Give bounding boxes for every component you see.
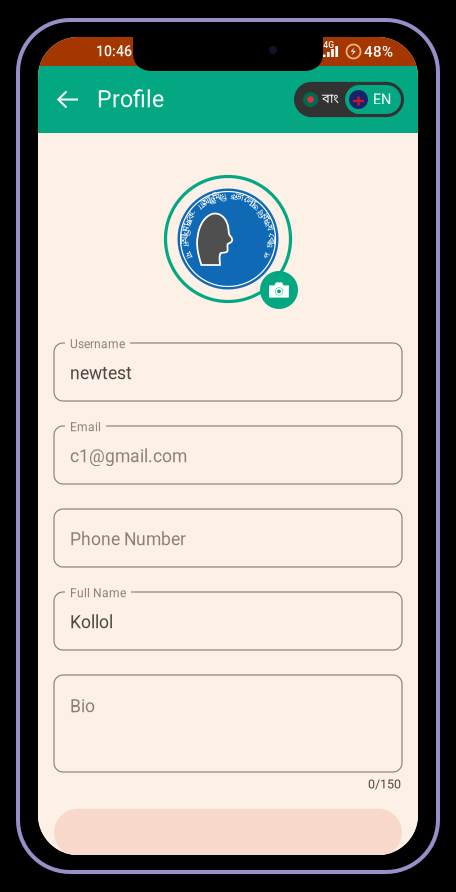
staticText: বাং xyxy=(322,91,339,108)
staticText: মি xyxy=(224,190,232,202)
button[interactable]: EN xyxy=(345,85,401,114)
staticText: Full Name xyxy=(70,586,126,600)
staticText: Profile xyxy=(97,86,164,113)
staticText: Bio xyxy=(70,696,95,716)
staticText xyxy=(227,190,229,202)
staticText: 10:46 xyxy=(96,43,132,60)
staticText: বো xyxy=(223,190,233,202)
staticText: c1@gmail.com xyxy=(70,446,187,466)
staticText: সি xyxy=(224,277,231,287)
staticText: ক xyxy=(224,277,231,287)
staticText: রা xyxy=(224,190,231,202)
staticText: 48% xyxy=(364,43,393,60)
staticText: newtest xyxy=(70,363,132,383)
staticText xyxy=(227,190,229,202)
staticText: র্থি xyxy=(224,277,231,287)
staticText: 4G xyxy=(323,40,334,50)
staticText: ক xyxy=(224,277,231,287)
staticText: EN xyxy=(373,91,391,108)
button[interactable]: Back xyxy=(38,72,97,127)
staticText: - xyxy=(226,277,229,287)
staticText: শা xyxy=(224,277,232,287)
staticText: আ xyxy=(223,190,233,202)
staticText: ক xyxy=(224,277,231,287)
staticText: লো xyxy=(222,190,234,202)
staticText: - xyxy=(226,277,229,287)
staticText: Phone Number xyxy=(70,529,186,549)
staticText: আ xyxy=(223,190,233,202)
staticText: কে xyxy=(223,190,233,202)
button[interactable]: বাং xyxy=(297,85,345,114)
staticText: রী xyxy=(224,277,231,287)
staticText: 0/150 xyxy=(368,777,401,792)
staticText: প xyxy=(225,277,231,287)
staticText: মা xyxy=(224,190,232,202)
staticText: Username xyxy=(70,337,125,351)
button[interactable]: Change profile photo xyxy=(260,271,298,309)
staticText: Email xyxy=(70,420,101,434)
staticText: চা xyxy=(225,277,231,287)
staticText xyxy=(227,190,229,202)
staticText: ভা xyxy=(224,190,232,202)
button[interactable] xyxy=(38,809,418,857)
staticText: - xyxy=(226,277,229,287)
staticText: খ xyxy=(225,190,231,202)
staticText: মা xyxy=(224,277,231,287)
staticText: আ xyxy=(223,277,233,287)
staticText: ন xyxy=(225,277,230,287)
staticText: রি xyxy=(224,277,231,287)
staticText: Kollol xyxy=(70,612,113,632)
